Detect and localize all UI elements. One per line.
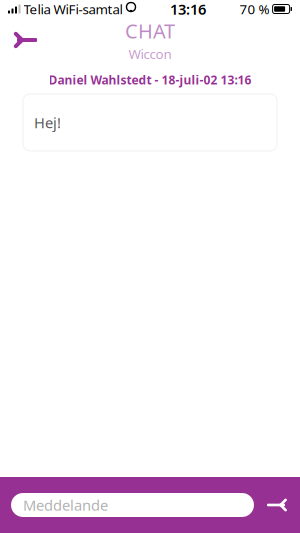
button[interactable]: Send <box>264 491 292 519</box>
staticText: 70 % <box>240 0 270 18</box>
staticText: CHAT <box>125 17 175 44</box>
staticText: Meddelande <box>23 495 108 515</box>
staticText: Wiccon <box>128 45 171 63</box>
staticText: Telia WiFi-samtal <box>23 0 122 18</box>
staticText: 13:16 <box>170 0 206 19</box>
staticText: Hej! <box>34 113 61 132</box>
button[interactable]: Meddelande <box>11 493 254 517</box>
button[interactable]: Back <box>0 18 48 62</box>
staticText: Daniel Wahlstedt - 18-juli-02 13:16 <box>48 72 251 88</box>
